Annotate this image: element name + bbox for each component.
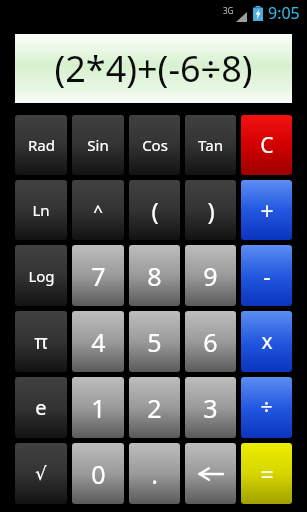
button[interactable]: + (241, 180, 292, 240)
button[interactable]: π (15, 311, 67, 372)
button[interactable]: Ln (15, 180, 67, 240)
staticText: π (34, 328, 48, 355)
staticText: Rad (28, 135, 55, 155)
button[interactable]: ^ (72, 180, 124, 240)
button[interactable]: Log (15, 245, 67, 306)
button[interactable]: Tan (185, 115, 236, 175)
button[interactable]: - (241, 245, 292, 306)
button[interactable]: Sin (72, 115, 124, 175)
staticText: Cos (142, 135, 168, 155)
staticText: 9:05 (268, 2, 300, 24)
staticText: 4 (91, 325, 106, 359)
button[interactable]: 3 (185, 377, 236, 438)
button[interactable]: 5 (129, 311, 180, 372)
button[interactable]: 1 (72, 377, 124, 438)
staticText: (2*4)+(-6÷8) (54, 44, 253, 93)
button[interactable]: 4 (72, 311, 124, 372)
staticText: ) (207, 194, 215, 227)
button[interactable]: Backspace (185, 443, 236, 504)
staticText: 9 (203, 259, 218, 293)
staticText: √ (35, 463, 47, 484)
staticText: 5 (147, 325, 162, 359)
staticText: Log (28, 266, 55, 286)
staticText: = (260, 458, 274, 489)
button[interactable]: √ (15, 443, 67, 504)
button[interactable]: ( (129, 180, 180, 240)
staticText: 1 (91, 391, 106, 425)
staticText: ^ (93, 199, 103, 222)
button[interactable]: e (15, 377, 67, 438)
button[interactable]: Cos (129, 115, 180, 175)
button[interactable]: C (241, 115, 292, 175)
staticText: ÷ (260, 393, 273, 422)
button[interactable]: Rad (15, 115, 67, 175)
staticText: e (35, 394, 47, 421)
button[interactable]: x (241, 311, 292, 372)
button[interactable]: ÷ (241, 377, 292, 438)
staticText: 7 (91, 259, 106, 293)
button[interactable]: . (129, 443, 180, 504)
button[interactable]: ) (185, 180, 236, 240)
staticText: Ln (32, 200, 50, 220)
staticText: Tan (198, 135, 223, 155)
staticText: 8 (147, 259, 162, 293)
button[interactable]: 2 (129, 377, 180, 438)
staticText: 2 (147, 391, 162, 425)
staticText: . (151, 457, 158, 491)
staticText: C (260, 131, 274, 160)
button[interactable]: 8 (129, 245, 180, 306)
button[interactable]: 6 (185, 311, 236, 372)
button[interactable]: 0 (72, 443, 124, 504)
staticText: Sin (87, 135, 109, 155)
staticText: 3G (223, 5, 234, 16)
staticText: 3 (203, 391, 218, 425)
button[interactable]: 7 (72, 245, 124, 306)
staticText: x (261, 327, 273, 356)
staticText: 0 (91, 457, 106, 491)
button[interactable]: = (241, 443, 292, 504)
staticText: 6 (203, 325, 218, 359)
staticText: + (260, 195, 274, 226)
staticText: ( (151, 194, 159, 227)
staticText: - (263, 260, 271, 291)
button[interactable]: 9 (185, 245, 236, 306)
